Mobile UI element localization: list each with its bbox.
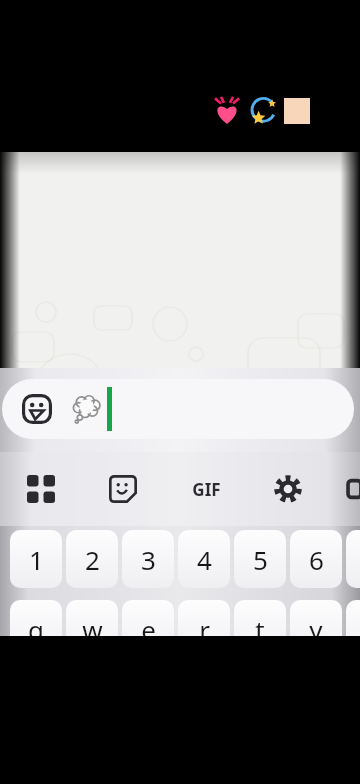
staticText: e [141, 612, 156, 647]
button[interactable]: 7 [346, 530, 360, 588]
button[interactable]: r [178, 600, 230, 658]
button[interactable]: w [66, 600, 118, 658]
button[interactable]: e [122, 600, 174, 658]
staticText: w [82, 612, 103, 647]
button[interactable]: u [346, 600, 360, 658]
button[interactable]: q [10, 600, 62, 658]
button[interactable]: 5 [234, 530, 286, 588]
staticText: 1 [29, 542, 44, 577]
staticText: 2 [85, 542, 100, 577]
button[interactable]: Emoji keyboard [2, 379, 354, 439]
button[interactable]: 1 [10, 530, 62, 588]
staticText: GIF [192, 478, 221, 501]
button[interactable]: Stickers [99, 467, 147, 511]
button[interactable]: More options [333, 467, 360, 511]
staticText: 5 [253, 542, 268, 577]
staticText: t [255, 612, 265, 647]
button[interactable]: 6 [290, 530, 342, 588]
staticText: 3 [141, 542, 156, 577]
staticText: r [199, 612, 210, 647]
staticText: q [28, 612, 44, 647]
staticText: 6 [309, 542, 324, 577]
button[interactable]: GIF [180, 469, 232, 509]
button[interactable]: 4 [178, 530, 230, 588]
button[interactable]: Settings [264, 467, 312, 511]
staticText: y [309, 612, 323, 647]
button[interactable]: y [290, 600, 342, 658]
button[interactable]: 2 [66, 530, 118, 588]
button[interactable]: Emoji keyboard [18, 390, 56, 428]
button[interactable]: 3 [122, 530, 174, 588]
button[interactable]: Apps [17, 467, 65, 511]
staticText: 4 [197, 542, 212, 577]
button[interactable]: t [234, 600, 286, 658]
